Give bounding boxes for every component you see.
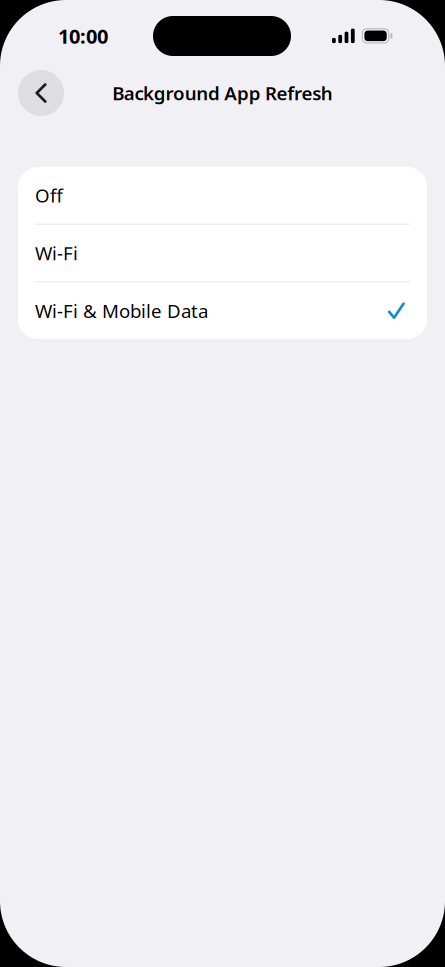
button[interactable]: Off: [18, 167, 427, 224]
staticText: Wi-Fi: [35, 241, 78, 265]
staticText: Off: [35, 183, 63, 208]
staticText: 10:00: [58, 23, 108, 49]
staticText: Wi-Fi & Mobile Data: [35, 298, 208, 323]
button[interactable]: Wi-Fi: [18, 225, 427, 281]
button[interactable]: Wi-Fi & Mobile Data: [18, 282, 427, 339]
staticText: Background App Refresh: [112, 81, 333, 105]
button[interactable]: Back: [18, 70, 64, 116]
